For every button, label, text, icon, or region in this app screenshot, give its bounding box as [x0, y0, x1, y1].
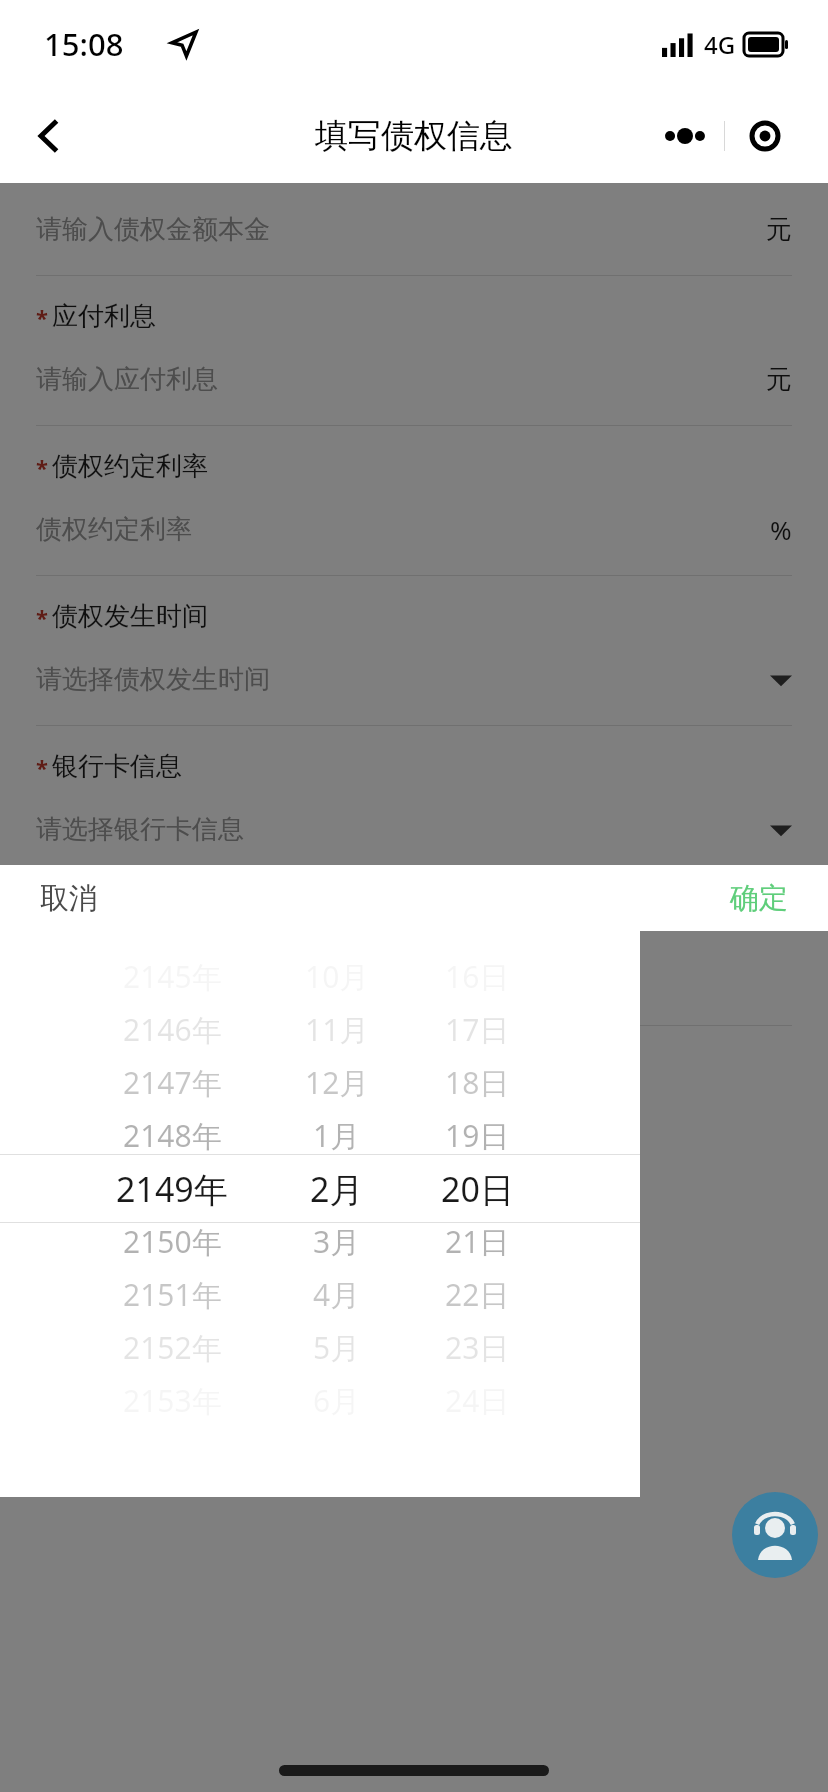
- staticText: 19日: [445, 1115, 510, 1156]
- staticText: 4月: [313, 1274, 361, 1315]
- staticText: 凭证号: [52, 900, 130, 933]
- staticText: 2148年: [123, 1115, 222, 1156]
- staticText: 15:08: [44, 23, 124, 65]
- staticText: 2146年: [123, 1009, 222, 1050]
- staticText: 2153年: [123, 1380, 222, 1421]
- staticText: 2152年: [123, 1327, 222, 1368]
- staticText: 债权发生时间: [52, 600, 208, 633]
- staticText: %: [770, 512, 792, 547]
- button[interactable]: 取消: [26, 874, 112, 923]
- staticText: 24日: [445, 1380, 510, 1421]
- staticText: 请选择债权发生时间: [36, 663, 270, 696]
- button[interactable]: 债权约定利率: [0, 483, 828, 575]
- staticText: 银行卡信息: [52, 750, 182, 783]
- staticText: 债权约定利率: [52, 450, 208, 483]
- staticText: 请输入应付利息: [36, 363, 218, 396]
- staticText: 20日: [441, 1166, 514, 1212]
- staticText: 填写债权信息: [315, 115, 513, 157]
- staticText: 1月: [313, 1115, 361, 1156]
- staticText: 2月: [310, 1166, 364, 1212]
- staticText: 2147年: [123, 1062, 222, 1103]
- staticText: 10月: [305, 956, 370, 997]
- staticText: 2151年: [123, 1274, 222, 1315]
- staticText: 18日: [445, 1062, 510, 1103]
- button[interactable]: Back: [20, 106, 80, 166]
- staticText: 确定: [730, 880, 788, 917]
- staticText: 请输入债权金额本金: [36, 213, 270, 246]
- staticText: 5月: [313, 1327, 361, 1368]
- other: Menu: [645, 109, 805, 163]
- staticText: 元: [766, 213, 792, 246]
- button[interactable]: 请选择银行卡信息: [0, 783, 828, 875]
- staticText: 11月: [305, 1009, 370, 1050]
- staticText: 请选择银行卡信息: [36, 813, 244, 846]
- button[interactable]: 请选择债权发生时间: [0, 633, 828, 725]
- button[interactable]: 请填写: [0, 933, 828, 1025]
- staticText: 应付利息: [52, 300, 156, 333]
- staticText: *: [36, 602, 48, 632]
- staticText: 12月: [305, 1062, 370, 1103]
- button[interactable]: [0, 183, 828, 1792]
- staticText: *: [36, 452, 48, 482]
- staticText: 21日: [445, 1221, 510, 1262]
- staticText: 2145年: [123, 956, 222, 997]
- staticText: 3月: [313, 1221, 361, 1262]
- staticText: *: [36, 302, 48, 332]
- button[interactable]: 确定: [716, 874, 802, 923]
- button[interactable]: 请输入应付利息: [0, 333, 828, 425]
- button[interactable]: More: [645, 109, 724, 163]
- staticText: 上传凭证: [52, 1050, 156, 1083]
- staticText: 17日: [445, 1009, 510, 1050]
- staticText: *: [36, 752, 48, 782]
- staticText: 元: [766, 363, 792, 396]
- staticText: 2149年: [116, 1166, 228, 1212]
- button[interactable]: 请输入债权金额本金: [0, 183, 828, 275]
- staticText: 23日: [445, 1327, 510, 1368]
- staticText: 6月: [313, 1380, 361, 1421]
- staticText: 22日: [445, 1274, 510, 1315]
- staticText: 取消: [40, 880, 98, 917]
- button[interactable]: Customer service: [732, 1492, 818, 1578]
- staticText: *: [36, 902, 48, 932]
- staticText: 2150年: [123, 1221, 222, 1262]
- staticText: 债权约定利率: [36, 513, 192, 546]
- staticText: 16日: [445, 956, 510, 997]
- staticText: 4G: [704, 28, 736, 61]
- button[interactable]: Close: [725, 109, 805, 163]
